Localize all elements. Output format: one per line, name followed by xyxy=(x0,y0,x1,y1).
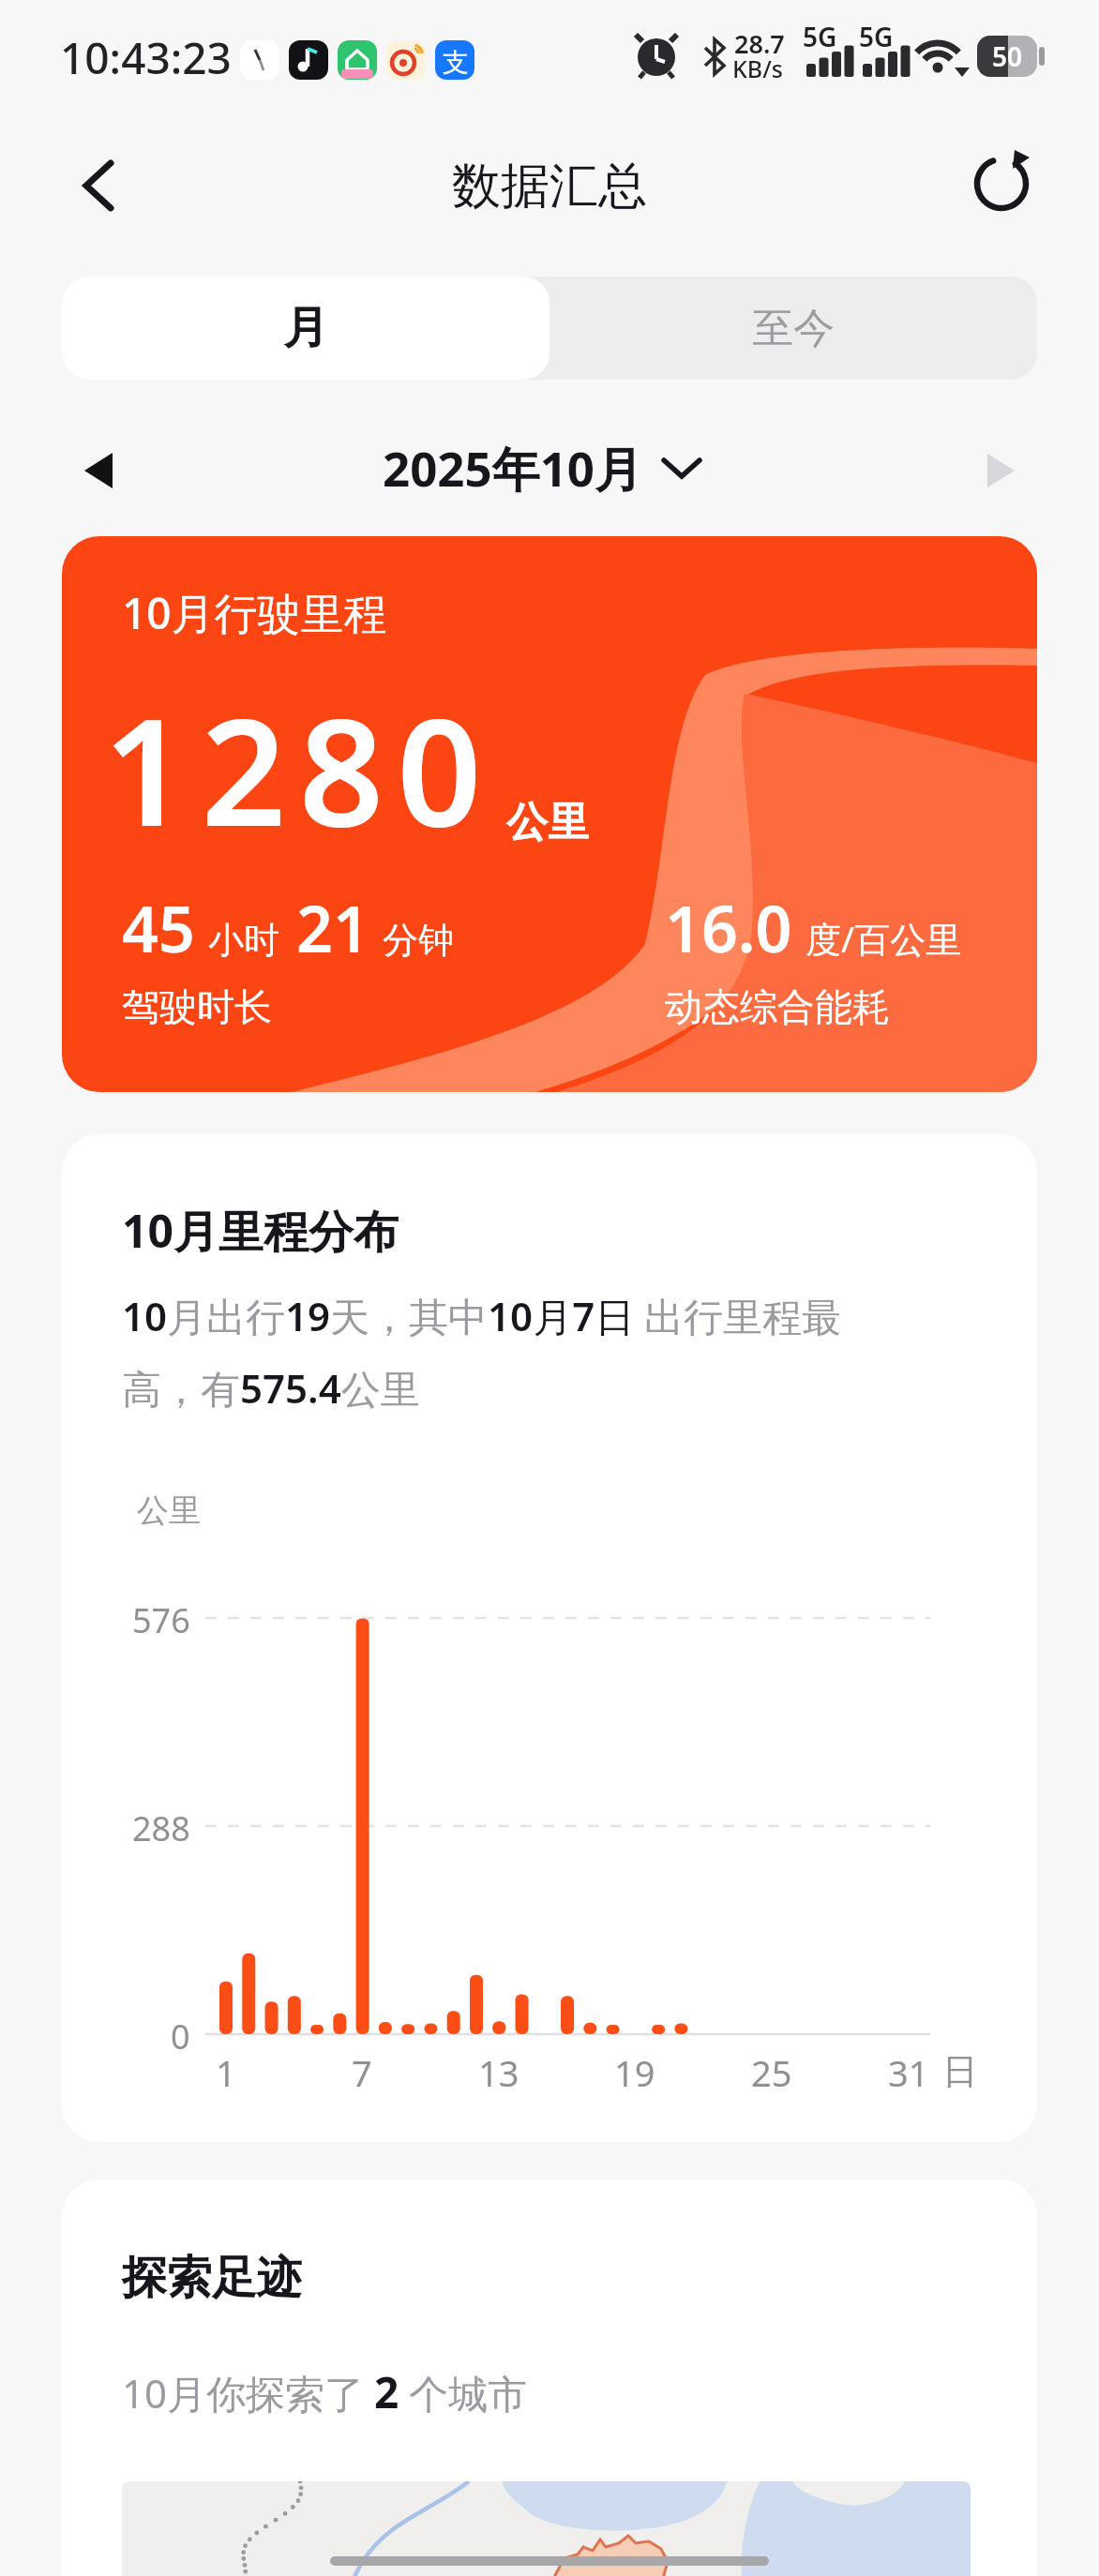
staticText: 1280 xyxy=(103,667,495,869)
staticText: 10月出行19天，其中10月7日 出行里程最 高，有575.4公里 xyxy=(122,1289,842,1415)
staticText: 月 xyxy=(283,300,328,356)
staticText: 1 xyxy=(216,2048,236,2095)
staticText: 288 xyxy=(132,1805,190,1847)
staticText: 10月你探索了 2 个城市 xyxy=(122,2362,528,2421)
button[interactable]: 探索足迹 xyxy=(62,2179,1037,2576)
staticText: 公里 xyxy=(137,1490,201,1531)
staticText: 分钟 xyxy=(383,918,454,963)
staticText: 5G xyxy=(859,19,894,54)
staticText: 7 xyxy=(352,2048,372,2095)
staticText: 10月里程分布 xyxy=(122,1200,399,1262)
staticText: 10:43:23 xyxy=(60,28,232,87)
staticText: 日 xyxy=(942,2049,978,2094)
staticText: 度/百公里 xyxy=(805,914,962,963)
button[interactable]: 10月里程分布 xyxy=(62,1134,1037,2142)
staticText: 0 xyxy=(171,2014,190,2055)
staticText: 动态综合能耗 xyxy=(665,983,890,1030)
staticText: 2025年10月 xyxy=(383,435,643,501)
staticText: 13 xyxy=(478,2048,519,2095)
staticText: 45 xyxy=(122,884,195,971)
button[interactable] xyxy=(66,150,137,221)
staticText: 31 xyxy=(888,2048,929,2095)
staticText: 21 xyxy=(296,884,369,971)
staticText: 28.7 xyxy=(734,26,785,61)
button[interactable]: 月 xyxy=(62,277,549,380)
button[interactable]: 至今 xyxy=(549,277,1037,380)
button[interactable] xyxy=(966,148,1037,219)
staticText: 支 xyxy=(443,46,469,79)
staticText: 数据汇总 xyxy=(452,156,647,217)
staticText: 5G xyxy=(803,19,837,54)
staticText: 19 xyxy=(614,2048,655,2095)
staticText: 探索足迹 xyxy=(122,2250,302,2306)
staticText: 16.0 xyxy=(665,884,792,971)
button[interactable]: 10月行驶里程 xyxy=(62,536,1037,1092)
staticText: 576 xyxy=(132,1597,190,1639)
staticText: 50 xyxy=(992,38,1023,74)
staticText: 驾驶时长 xyxy=(122,983,272,1030)
staticText: 公里 xyxy=(506,797,589,848)
staticText: 至今 xyxy=(752,303,835,354)
staticText: KB/s xyxy=(732,52,783,84)
staticText: 25 xyxy=(751,2048,792,2095)
staticText: 10月行驶里程 xyxy=(122,583,387,642)
staticText: 小时 xyxy=(208,918,279,963)
button[interactable] xyxy=(62,427,1037,516)
